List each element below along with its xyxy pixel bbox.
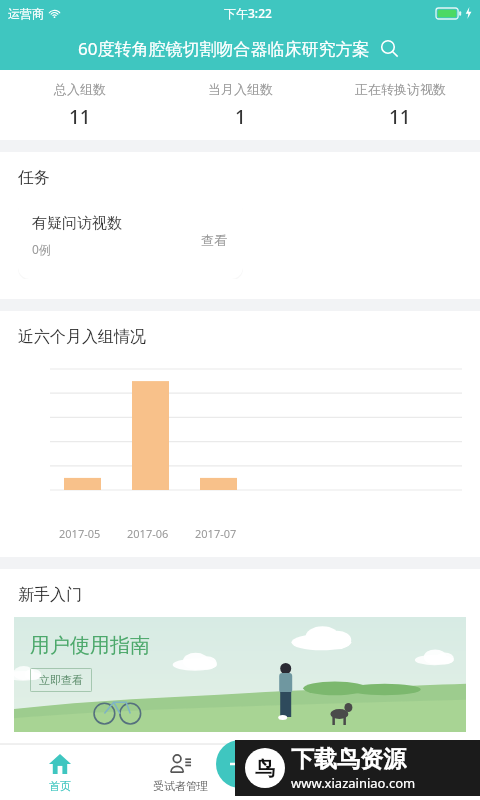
button[interactable]: Add bbox=[216, 740, 264, 788]
staticText: 下载鸟资源 bbox=[291, 745, 406, 774]
staticText: 查看 bbox=[201, 232, 227, 248]
staticText: 正在转换访视数 bbox=[355, 81, 446, 97]
staticText: 2017-06 bbox=[127, 526, 169, 541]
staticText: 运营商 bbox=[8, 6, 44, 21]
staticText: 有疑问访视数 bbox=[32, 214, 122, 233]
staticText: 11 bbox=[69, 104, 91, 130]
staticText: 近六个月入组情况 bbox=[18, 327, 146, 347]
button[interactable]: 总入组数 bbox=[0, 70, 160, 140]
staticText: www.xiazainiao.com bbox=[291, 774, 416, 792]
staticText: 新手入门 bbox=[18, 585, 82, 605]
staticText: 用户使用指南 bbox=[30, 633, 150, 658]
staticText: 下午3:22 bbox=[224, 5, 272, 21]
staticText: 60度转角腔镜切割吻合器临床研究方案 bbox=[78, 37, 370, 60]
staticText: 任务 bbox=[18, 168, 50, 188]
staticText: 11 bbox=[389, 104, 411, 130]
staticText: 首页 bbox=[49, 779, 71, 793]
staticText: 当月入组数 bbox=[208, 81, 273, 97]
staticText: 受试者管理 bbox=[153, 779, 208, 793]
button[interactable]: 有疑问访视数 bbox=[18, 200, 243, 279]
staticText: 立即查看 bbox=[39, 673, 83, 687]
staticText: 0例 bbox=[32, 241, 51, 257]
button[interactable]: 正在转换访视数 bbox=[320, 70, 480, 140]
staticText: 2017-05 bbox=[59, 526, 101, 541]
button[interactable]: 受试者管理 bbox=[120, 744, 240, 800]
staticText: 1 bbox=[235, 104, 246, 130]
staticText: 鸟 bbox=[255, 756, 275, 781]
button[interactable]: 首页 bbox=[0, 744, 120, 800]
staticText: 2017-07 bbox=[195, 526, 237, 541]
button[interactable]: 当月入组数 bbox=[160, 70, 320, 140]
button[interactable]: 立即查看 bbox=[30, 668, 92, 692]
button[interactable]: 用户使用指南 bbox=[14, 617, 466, 732]
staticText: 总入组数 bbox=[54, 81, 106, 97]
button[interactable]: Search bbox=[376, 35, 402, 61]
